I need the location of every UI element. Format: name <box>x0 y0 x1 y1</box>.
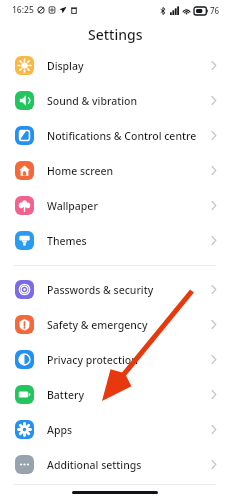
button[interactable]: Apps <box>0 412 230 447</box>
staticText: 76 <box>210 5 220 16</box>
staticText: Themes <box>47 234 211 248</box>
staticText: Apps <box>47 423 211 437</box>
button[interactable]: Passwords & security <box>0 272 230 307</box>
button[interactable]: Home screen <box>0 153 230 188</box>
staticText: Privacy protection <box>47 353 211 367</box>
button[interactable]: Battery <box>0 377 230 412</box>
staticText: Notifications & Control centre <box>47 129 211 143</box>
button[interactable]: Additional settings <box>0 447 230 482</box>
staticText: Safety & emergency <box>47 318 211 332</box>
button[interactable]: Notifications & Control centre <box>0 118 230 153</box>
staticText: Sound & vibration <box>47 94 211 108</box>
staticText: Display <box>47 59 211 73</box>
button[interactable]: Privacy protection <box>0 342 230 377</box>
staticText: Additional settings <box>47 458 211 472</box>
button[interactable]: Display <box>0 48 230 83</box>
button[interactable]: Safety & emergency <box>0 307 230 342</box>
staticText: Passwords & security <box>47 283 211 297</box>
staticText: Wallpaper <box>47 199 211 213</box>
button[interactable]: Wallpaper <box>0 188 230 223</box>
staticText: 16:25 <box>12 4 34 16</box>
staticText: Home screen <box>47 164 211 178</box>
staticText: Settings <box>88 25 143 44</box>
staticText: Battery <box>47 388 211 402</box>
button[interactable]: Themes <box>0 223 230 258</box>
button[interactable]: Sound & vibration <box>0 83 230 118</box>
